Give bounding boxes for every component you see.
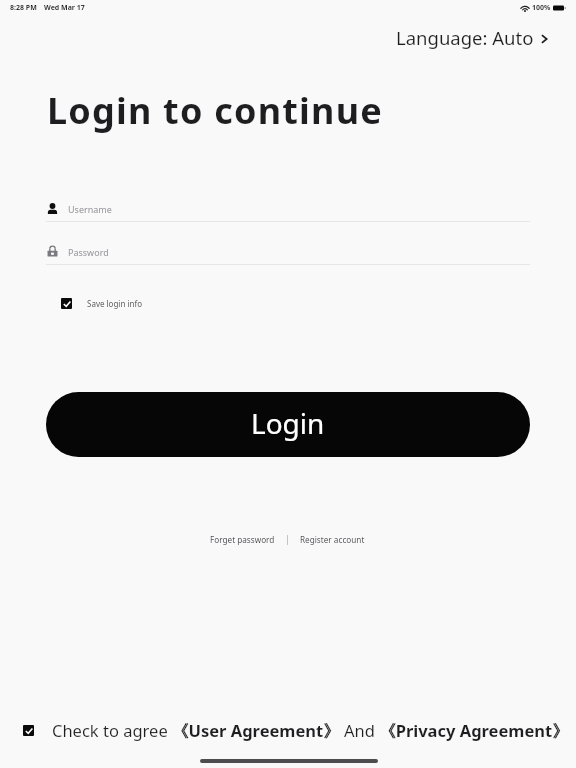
staticText: 100% bbox=[532, 3, 551, 13]
button[interactable]: Agree to terms bbox=[17, 719, 40, 742]
button[interactable]: Forget password bbox=[205, 529, 280, 550]
button[interactable]: Change language bbox=[383, 19, 560, 56]
staticText: Save login info bbox=[87, 298, 143, 309]
button[interactable]: Username bbox=[46, 196, 530, 222]
staticText: Language: Auto bbox=[396, 25, 534, 50]
staticText: Password bbox=[68, 246, 109, 258]
staticText: Forget password bbox=[210, 534, 275, 545]
button[interactable]: Password bbox=[46, 239, 530, 265]
staticText: Login bbox=[251, 404, 325, 442]
button[interactable]: Check to agree 《User Agreement》 And 《Pri… bbox=[52, 719, 569, 742]
button[interactable]: Register account bbox=[295, 529, 370, 550]
staticText: 8:28 PM bbox=[10, 3, 37, 13]
staticText: Username bbox=[68, 203, 112, 215]
staticText: Login to continue bbox=[47, 86, 383, 135]
button[interactable]: Login bbox=[46, 392, 530, 457]
staticText: Wed Mar 17 bbox=[44, 3, 85, 13]
button[interactable]: Save login info bbox=[55, 292, 149, 315]
staticText: Register account bbox=[300, 534, 365, 545]
